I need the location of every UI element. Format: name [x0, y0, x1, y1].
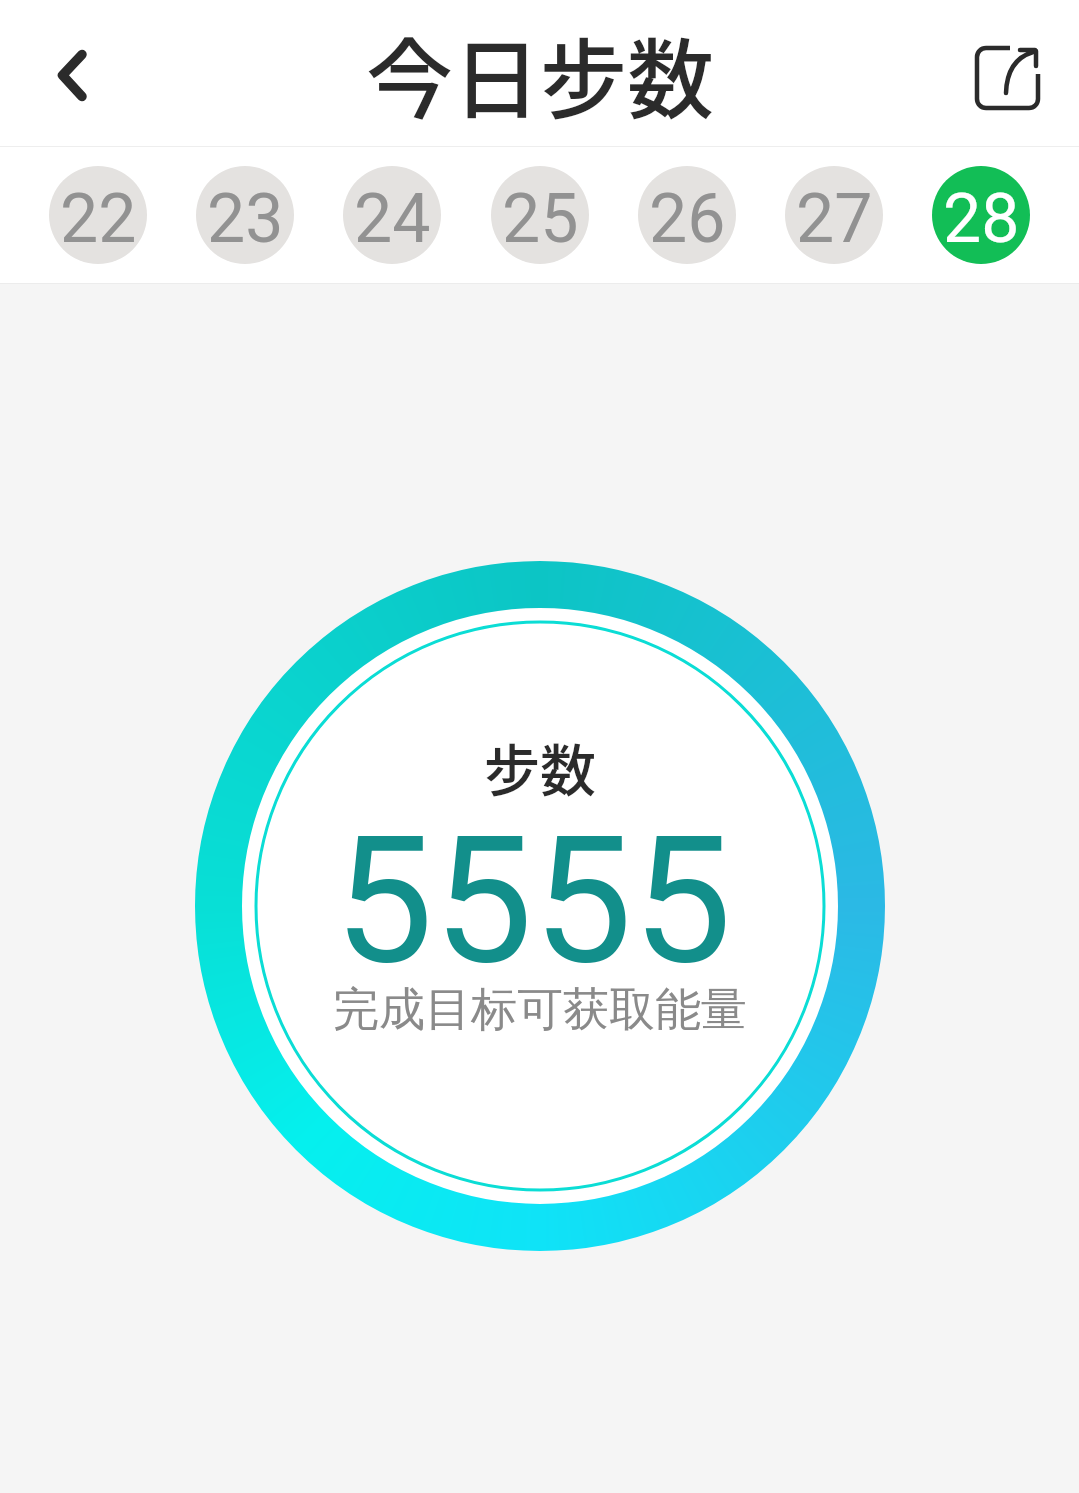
- button[interactable]: 28: [932, 166, 1030, 264]
- staticText: 23: [207, 179, 284, 259]
- button[interactable]: [0, 0, 130, 146]
- staticText: 26: [649, 179, 726, 259]
- button[interactable]: 24: [343, 166, 441, 264]
- staticText: 28: [943, 179, 1020, 259]
- staticText: 25: [502, 179, 579, 259]
- staticText: 5555: [334, 797, 732, 1004]
- staticText: 今日步数: [366, 11, 714, 137]
- staticText: 24: [354, 179, 431, 259]
- button[interactable]: [969, 18, 1079, 128]
- staticText: 22: [60, 179, 137, 259]
- staticText: 步数: [484, 726, 596, 807]
- button[interactable]: 26: [638, 166, 736, 264]
- staticText: 27: [796, 179, 873, 259]
- button[interactable]: 22: [49, 166, 147, 264]
- button[interactable]: 25: [491, 166, 589, 264]
- button[interactable]: 23: [196, 166, 294, 264]
- staticText: 完成目标可获取能量: [333, 981, 747, 1039]
- button[interactable]: 27: [785, 166, 883, 264]
